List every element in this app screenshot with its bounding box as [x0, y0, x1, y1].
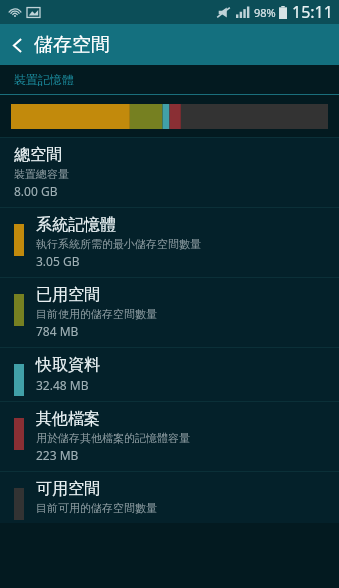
staticText: 可用空間: [36, 479, 100, 499]
staticText: 用於儲存其他檔案的記憶體容量: [36, 431, 190, 445]
staticText: 784 MB: [36, 323, 79, 339]
button[interactable]: 系統記憶體: [0, 208, 339, 277]
button[interactable]: Back: [0, 28, 34, 62]
staticText: 3.05 GB: [36, 253, 80, 269]
staticText: 執行系統所需的最小儲存空間數量: [36, 237, 201, 251]
staticText: 已用空間: [36, 285, 100, 305]
button[interactable]: 可用空間: [0, 472, 339, 523]
staticText: 223 MB: [36, 447, 79, 463]
staticText: 儲存空間: [34, 33, 110, 57]
staticText: 其他檔案: [36, 409, 100, 429]
button[interactable]: 總空間: [0, 138, 339, 207]
staticText: 目前可用的儲存空間數量: [36, 501, 157, 515]
staticText: 系統記憶體: [36, 215, 116, 235]
staticText: 98%: [254, 5, 276, 20]
staticText: 15:11: [292, 1, 333, 23]
staticText: 裝置總容量: [14, 167, 69, 181]
button[interactable]: 已用空間: [0, 278, 339, 347]
staticText: 32.48 MB: [36, 377, 89, 393]
staticText: 總空間: [14, 145, 62, 165]
button[interactable]: 其他檔案: [0, 402, 339, 471]
staticText: 裝置記憶體: [14, 72, 74, 87]
staticText: 快取資料: [36, 355, 100, 375]
button[interactable]: 快取資料: [0, 348, 339, 401]
staticText: 8.00 GB: [14, 183, 58, 199]
staticText: 目前使用的儲存空間數量: [36, 307, 157, 321]
